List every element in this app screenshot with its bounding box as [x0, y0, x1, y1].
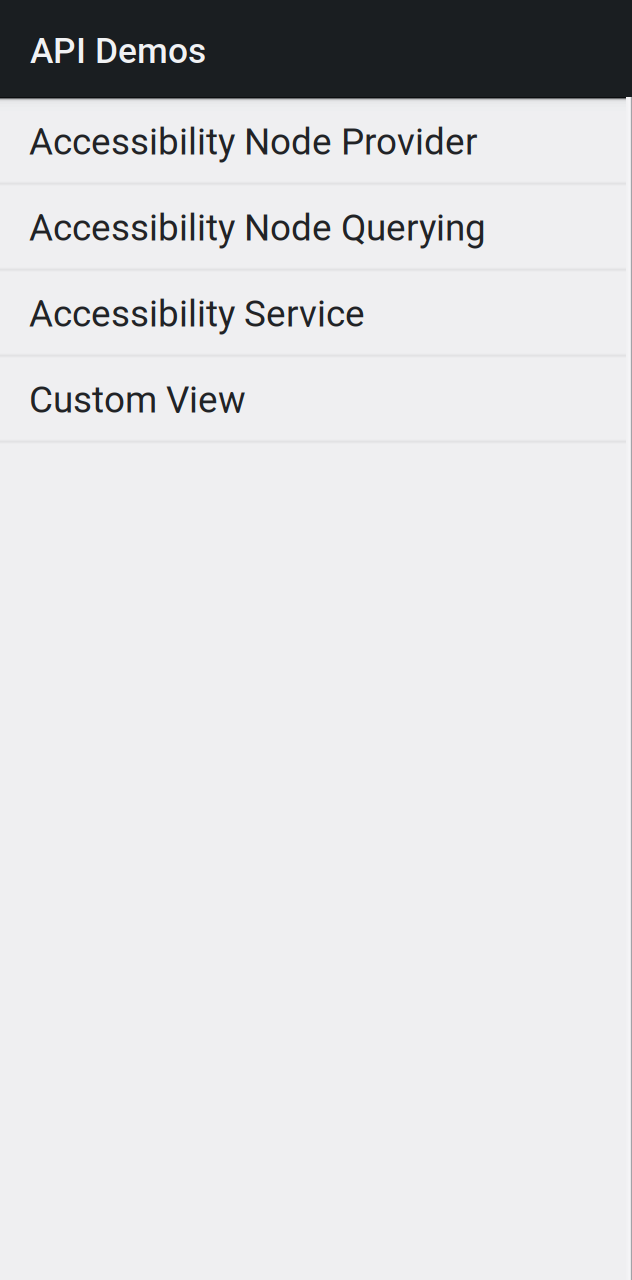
button[interactable]: Accessibility Node Provider — [0, 97, 632, 183]
staticText: Accessibility Service — [29, 292, 365, 335]
staticText: API Demos — [30, 30, 206, 72]
button[interactable]: Custom View — [0, 355, 632, 441]
staticText: Accessibility Node Querying — [29, 206, 486, 249]
staticText: Custom View — [29, 378, 246, 421]
staticText: Accessibility Node Provider — [29, 120, 477, 163]
button[interactable]: Accessibility Node Querying — [0, 183, 632, 269]
button[interactable]: Accessibility Service — [0, 269, 632, 355]
